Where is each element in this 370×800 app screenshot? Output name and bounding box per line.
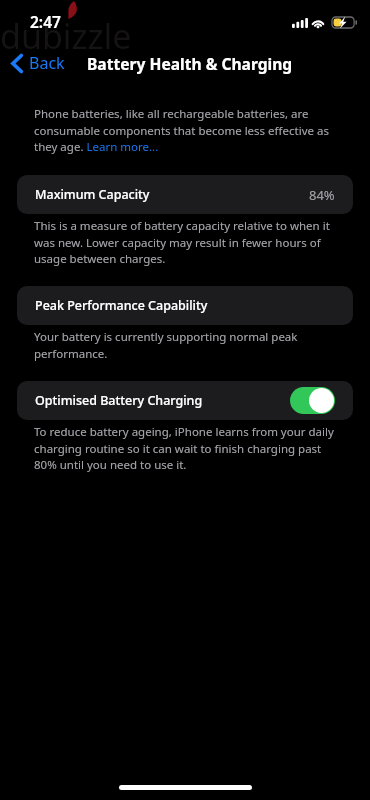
staticText: Battery Health & Charging [87,53,293,74]
staticText: Your battery is currently supporting nor… [34,329,342,361]
staticText: Peak Performance Capability [35,297,208,314]
button[interactable]: Optimised Battery Charging [17,381,353,420]
staticText: To reduce battery ageing, iPhone learns … [34,424,342,472]
staticText: Optimised Battery Charging [35,392,203,409]
staticText: This is a measure of battery capacity re… [34,218,342,266]
staticText: Back [29,52,65,74]
staticText: Phone batteries, like all rechargeable b… [34,106,342,154]
button[interactable]: Optimised Battery Charging toggle [290,387,335,414]
staticText: 84% [309,186,335,204]
staticText: dubizzle [0,13,132,59]
staticText: 2:47 [30,11,61,32]
button[interactable]: Back [0,52,73,74]
button[interactable]: Maximum Capacity [17,175,353,214]
staticText: Maximum Capacity [35,186,150,203]
button[interactable]: Peak Performance Capability [17,286,353,325]
